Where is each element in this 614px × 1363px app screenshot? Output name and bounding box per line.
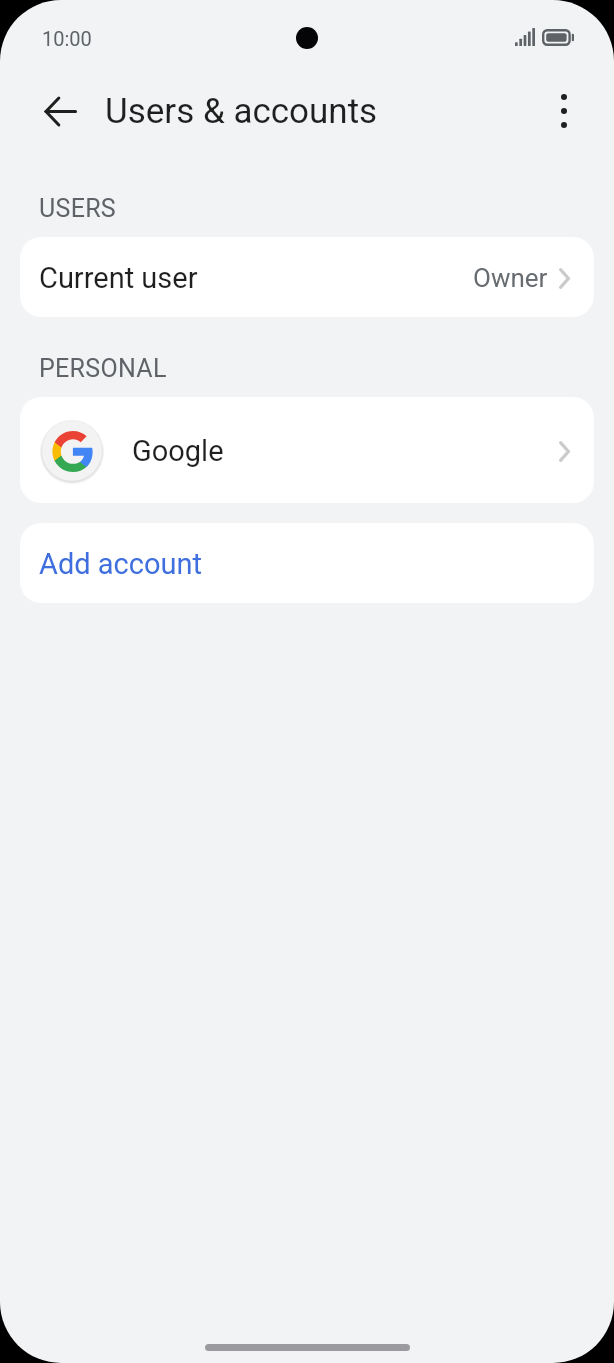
staticText: Google	[132, 434, 224, 468]
staticText: Owner	[473, 263, 548, 293]
button[interactable]: Current user	[20, 237, 594, 317]
button[interactable]: Back	[36, 87, 85, 136]
button[interactable]: Add account	[20, 523, 594, 603]
staticText: 10:00	[42, 27, 92, 50]
staticText: Current user	[39, 261, 198, 295]
button[interactable]: Google	[20, 397, 594, 503]
button[interactable]: More options	[540, 87, 588, 135]
staticText: USERS	[39, 194, 117, 223]
staticText: PERSONAL	[39, 354, 167, 383]
staticText: Add account	[39, 547, 202, 581]
staticText: Users & accounts	[105, 91, 378, 132]
